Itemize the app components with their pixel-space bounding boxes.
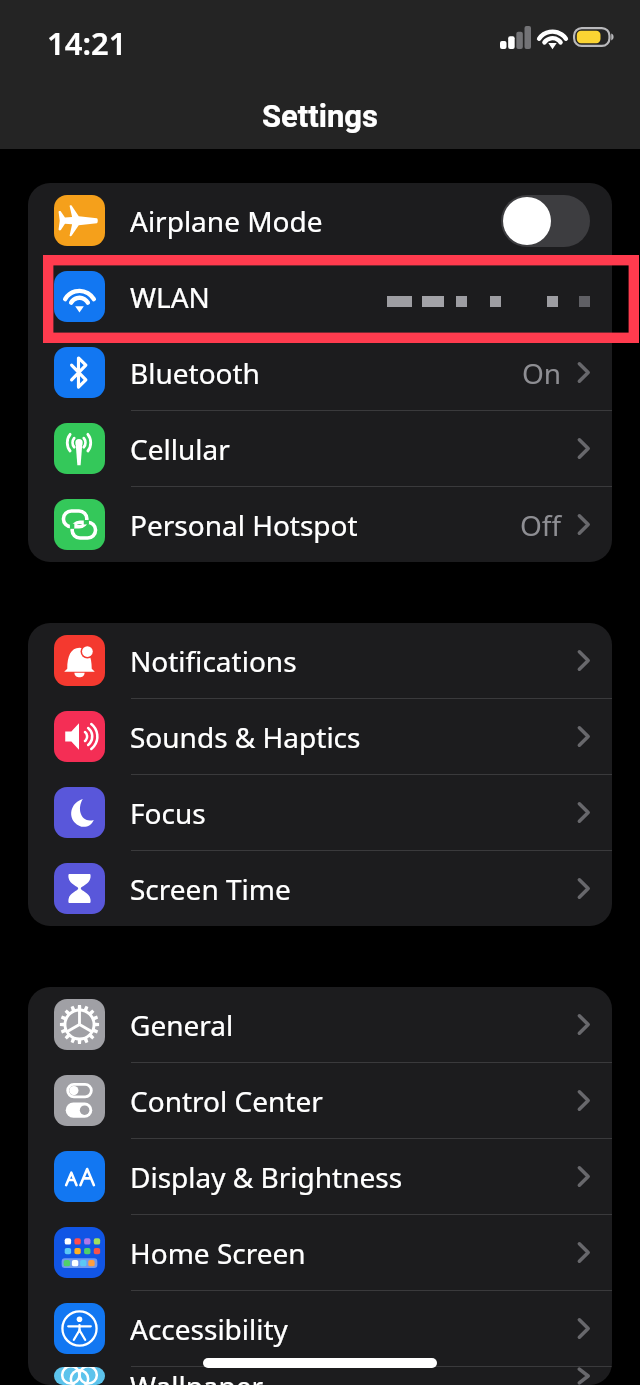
button[interactable]: WLAN bbox=[28, 259, 612, 335]
staticText: Sounds & Haptics bbox=[130, 718, 361, 756]
button[interactable]: Airplane Mode toggle bbox=[501, 195, 590, 247]
button[interactable]: Airplane Mode bbox=[28, 183, 612, 259]
staticText: Settings bbox=[262, 98, 379, 134]
button[interactable]: Personal Hotspot bbox=[28, 487, 612, 562]
staticText: Cellular bbox=[130, 430, 230, 468]
button[interactable]: Accessibility bbox=[28, 1291, 612, 1367]
staticText: Off bbox=[520, 506, 562, 544]
button[interactable]: Screen Time bbox=[28, 851, 612, 926]
staticText: Display & Brightness bbox=[130, 1158, 403, 1196]
staticText: Wallpaper bbox=[130, 1367, 264, 1385]
button[interactable]: Notifications bbox=[28, 623, 612, 699]
staticText: General bbox=[130, 1006, 234, 1044]
staticText: Accessibility bbox=[130, 1310, 288, 1348]
button[interactable]: Display & Brightness bbox=[28, 1139, 612, 1215]
staticText: On bbox=[522, 354, 562, 392]
staticText: Airplane Mode bbox=[130, 202, 323, 240]
staticText: Control Center bbox=[130, 1082, 323, 1120]
staticText: Home Screen bbox=[130, 1234, 306, 1272]
staticText: Focus bbox=[130, 794, 206, 832]
button[interactable]: Wallpaper bbox=[28, 1367, 612, 1385]
button[interactable]: Bluetooth bbox=[28, 335, 612, 411]
staticText: Screen Time bbox=[130, 870, 291, 908]
staticText: Bluetooth bbox=[130, 354, 260, 392]
button[interactable]: Cellular bbox=[28, 411, 612, 487]
staticText: Personal Hotspot bbox=[130, 506, 358, 544]
button[interactable]: Sounds & Haptics bbox=[28, 699, 612, 775]
button[interactable]: Home Screen bbox=[28, 1215, 612, 1291]
button[interactable]: General bbox=[28, 987, 612, 1063]
staticText: WLAN bbox=[130, 278, 210, 316]
button[interactable]: Focus bbox=[28, 775, 612, 851]
staticText: 14:21 bbox=[47, 22, 127, 64]
button[interactable]: Control Center bbox=[28, 1063, 612, 1139]
staticText: Notifications bbox=[130, 642, 297, 680]
